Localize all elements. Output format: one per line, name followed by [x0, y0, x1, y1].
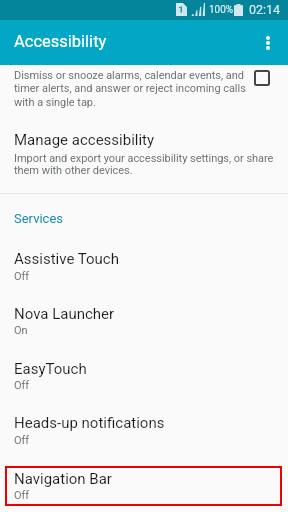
- staticText: Off: [14, 379, 30, 392]
- button[interactable]: Enable quick gesture: [254, 70, 270, 86]
- staticText: Off: [14, 270, 30, 283]
- button[interactable]: [0, 290, 288, 345]
- staticText: them with other devices.: [14, 164, 133, 177]
- button[interactable]: [0, 399, 288, 454]
- staticText: Import and export your accessibility set…: [14, 152, 274, 165]
- staticText: Assistive Touch: [14, 250, 119, 268]
- staticText: Navigation Bar: [14, 470, 112, 488]
- staticText: timer alerts, and answer or reject incom…: [14, 82, 246, 95]
- staticText: 100%: [209, 4, 234, 16]
- button[interactable]: [0, 345, 288, 400]
- staticText: Manage accessibility: [14, 131, 155, 149]
- staticText: On: [14, 324, 28, 337]
- staticText: Accessibility: [14, 32, 107, 51]
- button[interactable]: More options: [248, 20, 288, 65]
- staticText: EasyTouch: [14, 360, 87, 378]
- staticText: with a single tap.: [14, 96, 96, 109]
- staticText: Dismiss or snooze alarms, calendar event…: [14, 69, 244, 82]
- staticText: Heads-up notifications: [14, 414, 165, 432]
- staticText: Services: [14, 211, 63, 226]
- staticText: Off: [14, 434, 30, 447]
- staticText: Nova Launcher: [14, 305, 115, 323]
- staticText: Off: [14, 489, 30, 502]
- button[interactable]: [0, 122, 288, 192]
- staticText: 02:14: [249, 2, 281, 17]
- button[interactable]: [0, 235, 288, 290]
- button[interactable]: [5, 466, 282, 506]
